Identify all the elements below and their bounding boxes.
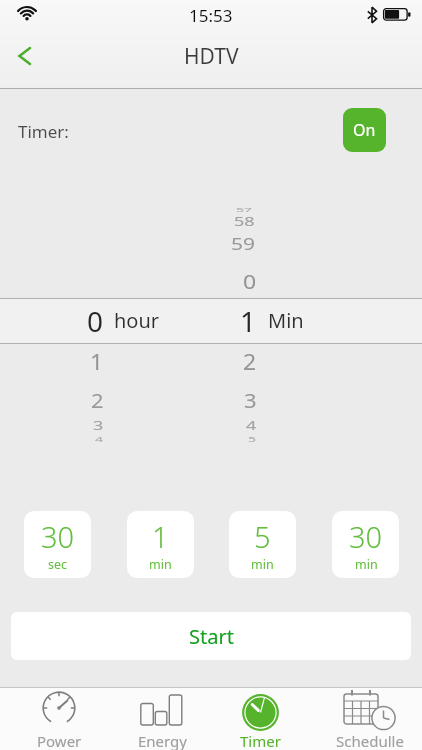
staticText: 1 [240,302,257,340]
staticText: 0 [243,267,257,294]
staticText: Min [268,307,304,334]
staticText: 0 [87,302,104,340]
button[interactable] [211,687,317,750]
staticText: Start [189,623,234,650]
staticText: Energy [138,731,187,750]
staticText: Power [37,731,82,750]
staticText: 3 [244,387,257,413]
staticText: min [355,556,378,573]
staticText: Timer [240,731,281,750]
staticText: 57 [236,205,253,213]
staticText: 2 [243,347,257,376]
staticText: sec [48,556,68,573]
staticText: min [251,556,274,573]
button[interactable]: 1 [127,511,194,578]
staticText: hour [114,307,160,334]
button[interactable] [106,687,212,750]
staticText: Schedulle [336,731,404,750]
staticText: min [149,556,172,573]
staticText: HDTV [184,42,239,71]
staticText: 30 [349,517,383,556]
staticText: 1 [90,347,104,376]
staticText: 58 [234,213,255,230]
staticText: 2 [91,387,104,413]
staticText: 3 [93,417,104,434]
staticText: 1 [152,517,169,556]
staticText: On [353,119,376,141]
staticText: 4 [95,435,104,444]
staticText: 5 [254,517,271,556]
button[interactable] [317,687,422,750]
button[interactable]: Start [11,612,411,660]
staticText: 59 [231,233,256,256]
button[interactable]: 30 [332,511,399,578]
staticText: 30 [41,517,75,556]
button[interactable]: 30 [24,511,91,578]
staticText: Timer: [18,120,69,143]
staticText: 15:53 [189,4,233,27]
button[interactable] [2,34,46,78]
button[interactable]: On [343,108,386,152]
staticText: 4 [246,417,257,434]
button[interactable] [0,687,106,750]
staticText: 5 [248,435,257,444]
button[interactable]: 5 [229,511,296,578]
